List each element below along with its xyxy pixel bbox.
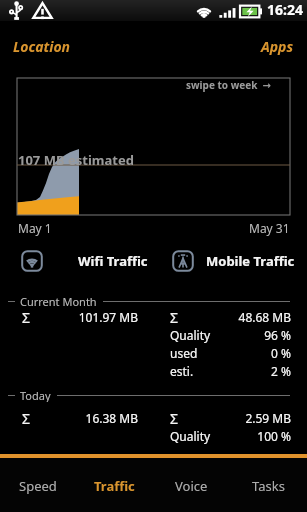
staticText: 48.68 MB [238,309,291,325]
staticText: Location [13,37,71,56]
staticText: 100 % [257,428,291,444]
staticText: 0 % [271,345,291,361]
staticText: 2.59 MB [245,410,291,426]
staticText: Speed [19,477,57,495]
staticText: Current Month [20,294,97,308]
staticText: Apps [261,37,294,56]
button[interactable]: Wifi Traffic [17,246,148,276]
staticText: Quality [170,327,211,343]
staticText: Tasks [252,477,285,495]
staticText: 96 % [264,327,291,343]
staticText: Σ [22,308,31,326]
staticText: Σ [170,308,179,326]
staticText: 101.97 MB [78,309,138,325]
staticText: Voice [175,477,208,495]
staticText: May 31 [249,220,290,236]
staticText: swipe to week → [186,78,271,92]
staticText: May 1 [18,220,52,236]
staticText: Traffic [94,477,135,495]
staticText: 2 % [271,363,291,379]
staticText: Σ [170,409,179,427]
staticText: Today [20,388,51,402]
button[interactable]: Tasks [230,458,307,512]
staticText: esti. [170,363,194,379]
button[interactable]: Apps [248,31,307,68]
staticText: 107 MB estimated [18,151,134,169]
staticText: Wifi Traffic [78,252,148,270]
button[interactable]: Speed [0,458,76,512]
button[interactable]: Voice [153,458,230,512]
staticText: Mobile Traffic [206,252,295,270]
staticText: 16:24 [267,0,303,19]
staticText: Quality [170,428,211,444]
button[interactable]: Mobile Traffic [168,246,295,276]
staticText: Σ [22,409,31,427]
button[interactable]: Location [0,31,84,68]
staticText: used [170,345,198,361]
button[interactable]: Traffic [76,458,153,512]
staticText: 16.38 MB [85,410,138,426]
